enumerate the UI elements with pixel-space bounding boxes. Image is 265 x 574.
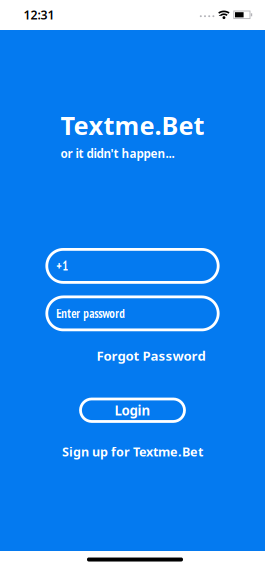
staticText: 12:31 — [23, 6, 54, 23]
staticText: +1 — [56, 258, 68, 274]
button[interactable]: Forgot Password — [96, 347, 205, 365]
staticText: Forgot Password — [96, 347, 205, 365]
staticText: or it didn't happen... — [60, 145, 174, 161]
staticText: Enter password — [56, 305, 125, 321]
button[interactable]: Login — [80, 399, 184, 421]
staticText: Login — [114, 401, 150, 419]
button[interactable]: Sign up for Textme.Bet — [62, 443, 203, 460]
button[interactable]: +1 — [47, 249, 218, 282]
button[interactable]: Enter password — [47, 297, 218, 330]
staticText: Textme.Bet — [60, 108, 204, 142]
staticText: Sign up for Textme.Bet — [62, 443, 203, 460]
